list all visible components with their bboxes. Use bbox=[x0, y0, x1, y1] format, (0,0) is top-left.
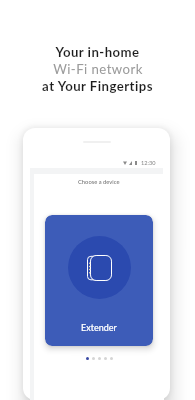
staticText: Choose a device bbox=[78, 178, 120, 185]
button[interactable]: Extender bbox=[45, 215, 153, 346]
staticText: 12:30 bbox=[141, 159, 156, 166]
staticText: Wi-Fi network bbox=[53, 61, 143, 77]
staticText: at Your Fingertips bbox=[42, 78, 153, 94]
staticText: Your in-home bbox=[55, 44, 140, 60]
staticText: Extender bbox=[81, 322, 117, 333]
